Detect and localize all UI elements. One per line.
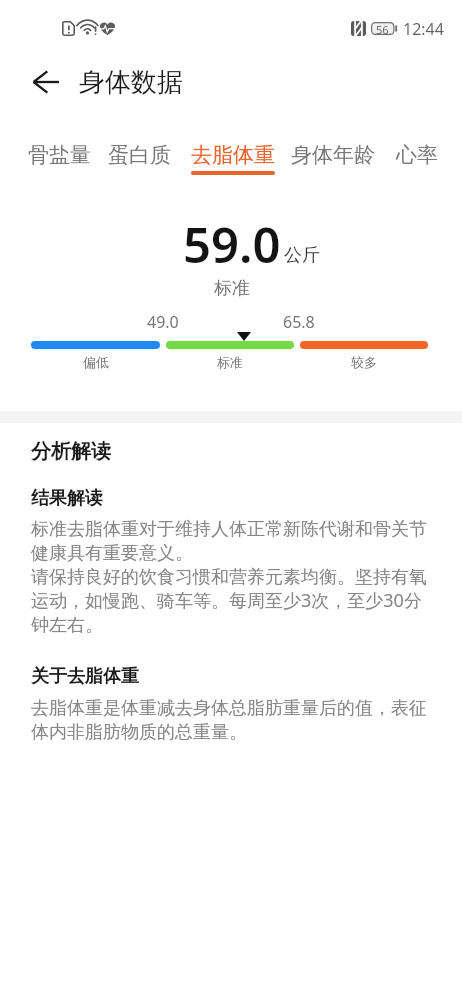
button[interactable]: 心率 [386,131,448,177]
staticText: 蛋白质 [108,142,171,168]
staticText: 59.0 [183,211,281,278]
staticText: 标准 [217,354,243,370]
button[interactable]: 身体年龄 [281,131,385,177]
staticText: 分析解读 [31,439,111,464]
staticText: 偏低 [83,354,109,370]
staticText: 身体年龄 [291,142,375,168]
staticText: 56 [376,22,389,35]
button[interactable]: Back [20,56,72,108]
staticText: 去脂体重 [191,142,275,168]
staticText: 身体数据 [79,66,183,99]
staticText: 去脂体重是体重减去身体总脂肪重量后的值，表征体内非脂肪物质的总重量。 [31,697,431,743]
staticText: 骨盐量 [28,142,91,168]
staticText: 12:44 [403,18,444,40]
staticText: 公斤 [284,244,320,267]
button[interactable]: 骨盐量 [18,131,101,177]
button[interactable]: 蛋白质 [98,131,181,177]
staticText: 较多 [351,354,377,370]
button[interactable]: 去脂体重 [181,131,285,177]
staticText: 标准 [214,277,250,300]
staticText: 标准去脂体重对于维持人体正常新陈代谢和骨关节健康具有重要意义。 请保持良好的饮食… [31,518,431,636]
staticText: 65.8 [283,311,315,333]
staticText: 49.0 [147,311,179,333]
staticText: 心率 [396,142,438,168]
staticText: 结果解读 [31,487,103,510]
staticText: 关于去脂体重 [31,665,139,688]
